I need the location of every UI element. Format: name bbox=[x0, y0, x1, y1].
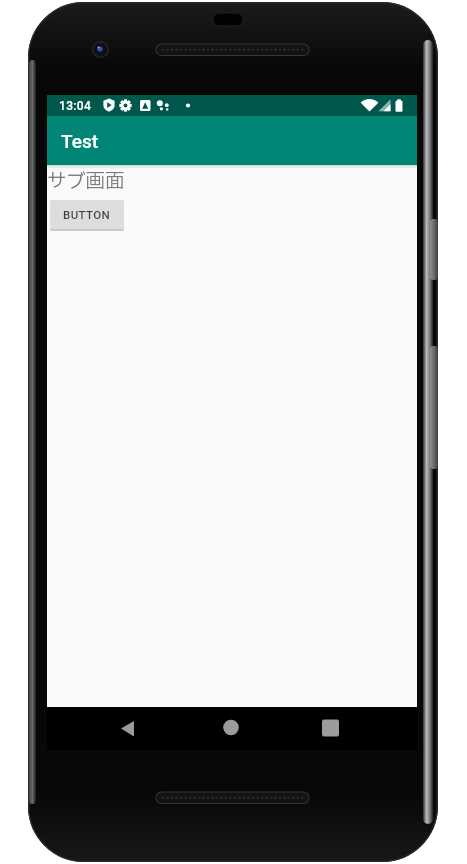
staticText: サブ画面 bbox=[47, 167, 125, 196]
button[interactable] bbox=[47, 707, 171, 750]
button[interactable] bbox=[171, 707, 294, 750]
staticText: 13:04 bbox=[59, 99, 92, 113]
button[interactable]: BUTTON bbox=[50, 200, 124, 229]
button[interactable] bbox=[294, 707, 417, 750]
staticText: Test bbox=[61, 130, 99, 152]
staticText: BUTTON bbox=[63, 208, 111, 221]
